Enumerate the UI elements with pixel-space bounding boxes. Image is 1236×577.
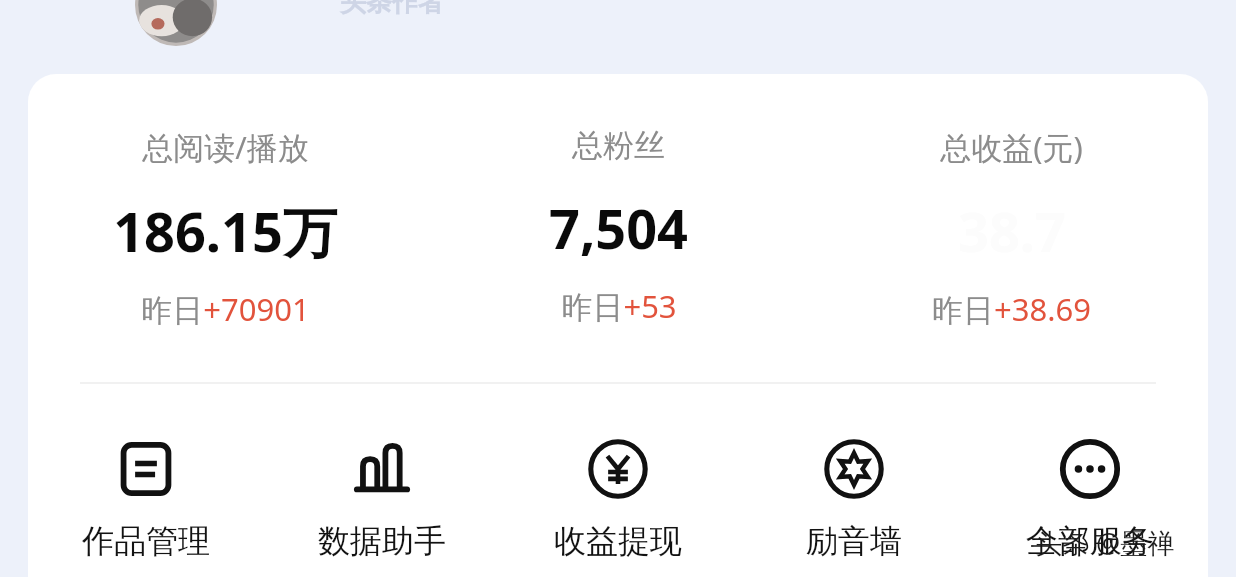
button[interactable]: 总阅读/播放 (28, 122, 422, 334)
staticText: 总阅读/播放 (142, 126, 309, 168)
staticText: 数据助手 (318, 521, 446, 561)
button[interactable]: 总收益(元) (815, 122, 1208, 334)
staticText: 头条 @墨禅 (1035, 524, 1175, 561)
button[interactable]: Profile avatar (135, 0, 217, 46)
button[interactable]: 全部服务 (972, 429, 1208, 567)
button[interactable]: 收益提现 (500, 429, 736, 567)
staticText: 励音墙 (806, 521, 902, 561)
staticText: 186.15万 (113, 194, 337, 268)
button[interactable]: 总粉丝 (422, 122, 815, 331)
staticText: 昨日+70901 (141, 288, 310, 330)
button[interactable]: 作品管理 (28, 429, 264, 567)
staticText: 昨日+38.69 (932, 288, 1091, 330)
staticText: 总粉丝 (572, 126, 665, 165)
staticText: 全部服务 (1026, 521, 1154, 561)
staticText: 收益提现 (554, 521, 682, 561)
staticText: 总收益(元) (940, 126, 1083, 168)
staticText: 头条作者 (340, 0, 444, 19)
button[interactable]: 数据助手 (264, 429, 500, 567)
staticText: 作品管理 (82, 521, 210, 561)
staticText: 7,504 (549, 191, 688, 265)
button[interactable]: 头条作者 (340, 0, 444, 19)
staticText: 昨日+53 (561, 285, 677, 327)
button[interactable]: 励音墙 (736, 429, 972, 567)
